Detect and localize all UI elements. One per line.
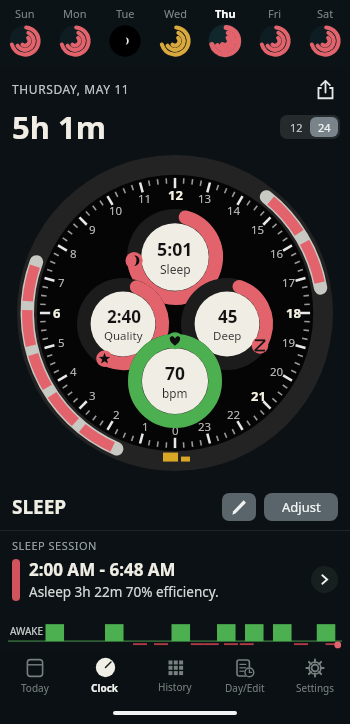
staticText: 3: [89, 388, 96, 404]
staticText: 23: [198, 419, 212, 435]
staticText: Quality: [104, 328, 143, 344]
staticText: Fri: [268, 6, 282, 21]
button[interactable]: Clock: [70, 650, 140, 702]
staticText: Settings: [296, 681, 335, 695]
staticText: Clock: [91, 681, 119, 695]
staticText: Wed: [164, 6, 187, 21]
staticText: 2: [113, 407, 120, 423]
staticText: 11: [138, 191, 152, 207]
button[interactable]: [77, 278, 169, 370]
button[interactable]: Fri: [250, 0, 300, 66]
staticText: 17: [282, 275, 296, 291]
staticText: Day/Edit: [225, 681, 265, 695]
button[interactable]: Settings: [280, 650, 350, 702]
staticText: History: [158, 680, 192, 694]
staticText: 15: [251, 222, 265, 238]
button[interactable]: Adjust: [264, 493, 338, 521]
staticText: Today: [21, 681, 49, 695]
staticText: THURSDAY, MAY 11: [12, 81, 310, 97]
staticText: 5:01: [157, 237, 193, 261]
button[interactable]: 2:00 AM - 6:48 AM: [12, 558, 338, 601]
button[interactable]: Day/Edit: [210, 650, 280, 702]
staticText: 6: [53, 304, 61, 322]
staticText: 20: [270, 364, 284, 380]
staticText: 5: [58, 335, 65, 351]
button[interactable]: [181, 278, 273, 370]
staticText: 1: [142, 419, 149, 435]
button[interactable]: 12: [282, 117, 310, 137]
button[interactable]: Sun: [0, 0, 50, 66]
button[interactable]: [128, 334, 222, 428]
staticText: 2:00 AM - 6:48 AM: [29, 558, 176, 581]
staticText: 16: [270, 246, 284, 262]
staticText: 14: [227, 203, 241, 219]
staticText: 0: [172, 423, 179, 439]
button[interactable]: Details: [311, 566, 338, 593]
staticText: Tue: [116, 6, 135, 21]
staticText: bpm: [162, 385, 188, 401]
staticText: 19: [282, 335, 296, 351]
staticText: SLEEP SESSION: [12, 538, 97, 553]
button[interactable]: Edit: [222, 493, 256, 521]
button[interactable]: 24: [310, 117, 338, 137]
button[interactable]: Share: [310, 74, 340, 104]
button[interactable]: Today: [0, 650, 70, 702]
staticText: 10: [109, 203, 123, 219]
staticText: Asleep 3h 22m 70% efficiency.: [29, 583, 219, 601]
staticText: 18: [286, 304, 301, 322]
staticText: 22: [227, 407, 241, 423]
staticText: 70: [165, 361, 185, 385]
staticText: 5h 1m: [12, 106, 280, 148]
button[interactable]: History: [140, 650, 210, 702]
staticText: 9: [89, 222, 96, 238]
button[interactable]: Tue: [100, 0, 150, 66]
staticText: Adjust: [282, 498, 321, 516]
staticText: Sat: [317, 6, 334, 21]
button[interactable]: Mon: [50, 0, 100, 66]
staticText: 2:40: [107, 305, 141, 328]
staticText: SLEEP: [12, 494, 222, 520]
staticText: 21: [251, 387, 266, 405]
button[interactable]: Wed: [150, 0, 200, 66]
staticText: 45: [218, 305, 238, 328]
staticText: 4: [70, 364, 77, 380]
staticText: Deep: [213, 328, 242, 344]
staticText: Sun: [15, 6, 35, 21]
staticText: 24: [318, 120, 331, 135]
button[interactable]: Thu: [200, 0, 250, 66]
button[interactable]: Sat: [300, 0, 350, 66]
staticText: 8: [70, 246, 77, 262]
staticText: AWAKE: [10, 624, 44, 638]
staticText: 12: [290, 120, 303, 135]
staticText: Thu: [215, 6, 236, 21]
button[interactable]: [127, 209, 223, 305]
staticText: 7: [58, 275, 65, 291]
staticText: 13: [198, 191, 212, 207]
staticText: 12: [168, 186, 183, 204]
staticText: Sleep: [160, 261, 191, 277]
staticText: Mon: [63, 6, 87, 21]
